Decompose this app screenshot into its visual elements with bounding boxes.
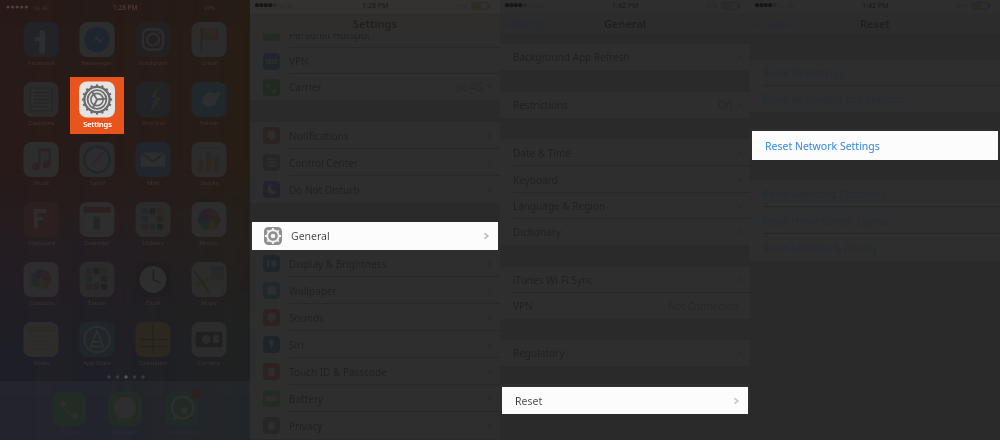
staticText: General (289, 230, 326, 244)
button[interactable]: Mail (125, 178, 181, 187)
button[interactable]: Photos (181, 238, 237, 247)
staticText: Reset (513, 391, 539, 405)
button[interactable]: Extras (69, 298, 125, 307)
staticText: Utilities (142, 239, 164, 247)
staticText: Contacts (29, 299, 54, 307)
button[interactable]: Settings (70, 77, 124, 134)
staticText: Do Not Disturb (289, 183, 360, 197)
button[interactable]: Dashlane (13, 118, 69, 127)
button[interactable]: Gmail (181, 58, 237, 67)
staticText: Twitter (199, 119, 219, 127)
button[interactable]: Notes (13, 358, 69, 367)
button[interactable]: App Store (69, 358, 125, 367)
staticText: Extras (88, 299, 106, 307)
button[interactable]: Flipboard (13, 238, 69, 247)
staticText: Gmail (201, 59, 218, 67)
button[interactable]: Settings (69, 118, 125, 127)
staticText: Display & Brightness (289, 257, 387, 271)
button[interactable]: Shortcut (125, 118, 181, 127)
button[interactable]: Camera (181, 358, 237, 367)
button[interactable]: Reset Network Settings (752, 131, 998, 160)
button[interactable]: Twitter (181, 118, 237, 127)
staticText: Settings (353, 16, 397, 31)
staticText: Calculator (139, 359, 168, 367)
button[interactable]: Reset Network Settings (750, 129, 1000, 158)
staticText: Mail (147, 179, 159, 187)
staticText: Sounds (289, 311, 324, 325)
button[interactable]: Safari (69, 178, 125, 187)
button[interactable]: Display & Brightness (250, 250, 500, 277)
button[interactable]: Calculator (125, 358, 181, 367)
button[interactable]: General (252, 222, 498, 250)
staticText: Instagram (138, 59, 168, 67)
staticText: Date & Time (513, 146, 571, 160)
staticText: Control Center (289, 156, 358, 170)
button[interactable]: Calendar (69, 238, 125, 247)
button[interactable]: Utilities (125, 238, 181, 247)
button[interactable]: Reset (502, 387, 748, 414)
button[interactable]: Stocks (181, 178, 237, 187)
button[interactable]: Messenger (69, 58, 125, 67)
staticText: Calendar (84, 239, 110, 247)
button[interactable]: Instagram (125, 58, 181, 67)
staticText: Photos (199, 239, 219, 247)
staticText: VPN (513, 299, 533, 313)
staticText: Carrier (289, 80, 322, 94)
button[interactable]: Reset (500, 384, 750, 411)
staticText: 47% (204, 4, 215, 11)
button[interactable]: Facebook (13, 58, 69, 67)
button[interactable]: Music (13, 178, 69, 187)
staticText: Dashlane (28, 119, 55, 127)
staticText: Clock (145, 299, 161, 307)
button[interactable]: Maps (181, 298, 237, 307)
staticText: Dictionary (513, 225, 561, 239)
staticText: VPN (289, 54, 309, 68)
button[interactable]: Contacts (13, 298, 69, 307)
button[interactable]: Touch ID & Passcode (250, 358, 500, 385)
button[interactable]: Clock (125, 298, 181, 307)
button[interactable]: General (250, 223, 500, 250)
staticText: Flipboard (28, 239, 55, 247)
staticText: Personal Hotspot (289, 34, 371, 42)
staticText: Reset (860, 16, 890, 31)
